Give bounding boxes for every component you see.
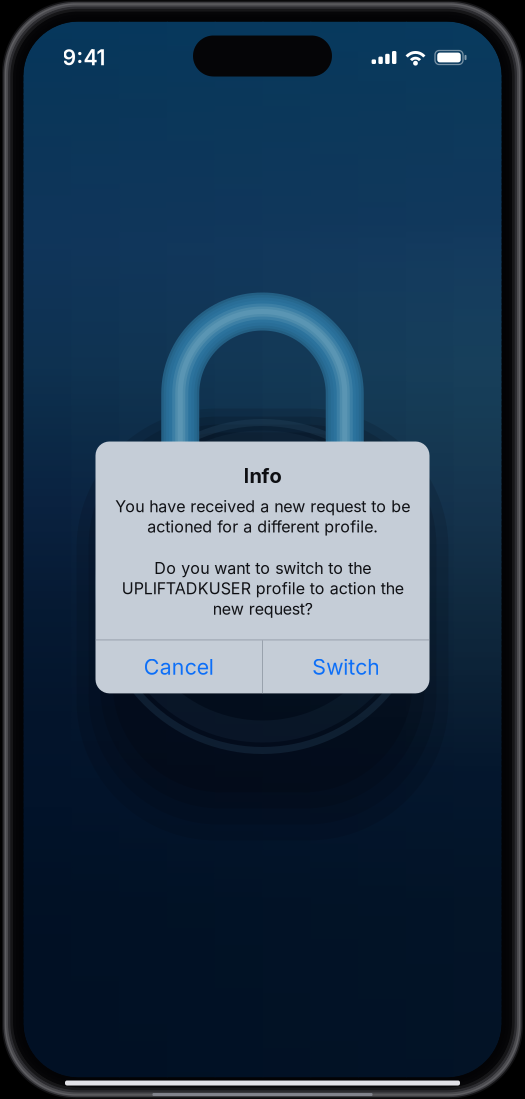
button[interactable]: Cancel	[95, 640, 262, 693]
staticText: Cancel	[144, 654, 214, 680]
staticText: Do you want to switch to the UPLIFTADKUS…	[121, 558, 403, 618]
staticText: Info	[243, 463, 281, 488]
staticText: Switch	[312, 654, 380, 680]
button[interactable]: Switch	[263, 640, 430, 693]
staticText: You have received a new request to be ac…	[115, 497, 410, 536]
staticText: 9:41	[62, 45, 105, 70]
